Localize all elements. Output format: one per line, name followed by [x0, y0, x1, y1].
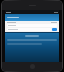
button[interactable]: Menu	[5, 10, 59, 14]
button[interactable]	[7, 28, 51, 31]
button[interactable]	[25, 35, 39, 37]
button[interactable]: Home	[30, 64, 35, 69]
button[interactable]	[7, 22, 57, 23]
button[interactable]	[5, 14, 59, 21]
button[interactable]: Submit	[52, 28, 57, 31]
button[interactable]	[7, 24, 57, 27]
